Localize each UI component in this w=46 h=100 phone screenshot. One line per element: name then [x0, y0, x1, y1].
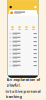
staticText: An exploration of playful,: [6, 77, 39, 87]
staticText: intuitive personal banking: [5, 88, 40, 99]
